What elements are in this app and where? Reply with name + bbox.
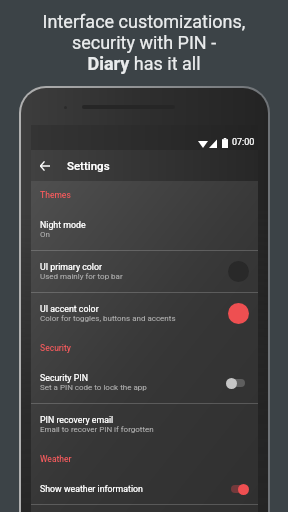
- button[interactable]: Choose colour: [228, 261, 249, 282]
- staticText: Themes: [40, 190, 71, 200]
- staticText: Email to recover PIN if forgotten: [40, 425, 154, 434]
- staticText: Color for toggles, buttons and accents: [40, 314, 176, 323]
- staticText: Security: [40, 343, 72, 353]
- button[interactable]: PIN recovery email: [31, 404, 258, 445]
- button[interactable]: Show weather information: [31, 473, 258, 504]
- staticText: Security PIN: [40, 373, 88, 383]
- button[interactable]: Security PIN: [31, 362, 258, 403]
- button[interactable]: Back: [31, 150, 58, 181]
- button[interactable]: Night mode: [31, 209, 258, 250]
- staticText: On: [40, 230, 50, 239]
- button[interactable]: UI primary color: [31, 251, 258, 292]
- button[interactable]: Switch on: [226, 483, 249, 495]
- staticText: UI accent color: [40, 304, 99, 314]
- staticText: PIN recovery email: [40, 415, 114, 425]
- button[interactable]: Switch off: [226, 377, 249, 389]
- button[interactable]: UI accent color: [31, 293, 258, 334]
- staticText: Show weather information: [40, 484, 143, 494]
- staticText: Settings: [67, 159, 110, 172]
- staticText: Interface customizations, security with …: [0, 11, 288, 74]
- staticText: UI primary color: [40, 262, 102, 272]
- staticText: Night mode: [40, 220, 86, 230]
- staticText: Set a PIN code to lock the app: [40, 383, 147, 392]
- staticText: Weather: [40, 454, 72, 464]
- staticText: Used mainly for top bar: [40, 272, 123, 281]
- button[interactable]: Choose colour: [228, 303, 249, 324]
- staticText: 07:00: [232, 137, 255, 148]
